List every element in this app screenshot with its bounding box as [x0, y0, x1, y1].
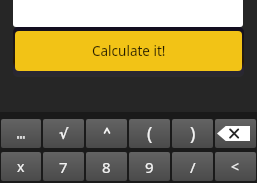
button[interactable]: (: [129, 119, 170, 148]
button[interactable]: <: [215, 152, 256, 181]
button[interactable]: [13, 0, 243, 27]
staticText: (: [147, 121, 153, 146]
button[interactable]: Square root: [43, 119, 84, 148]
staticText: /: [190, 157, 196, 177]
button[interactable]: Power: [86, 119, 127, 148]
staticText: Calculate it!: [92, 42, 166, 60]
button[interactable]: 9: [129, 152, 170, 181]
staticText: √: [59, 126, 69, 142]
button[interactable]: Ellipsis: [1, 119, 41, 148]
button[interactable]: Calculate it!: [15, 31, 242, 71]
button[interactable]: x: [1, 152, 41, 181]
button[interactable]: ): [172, 119, 213, 148]
button[interactable]: 7: [43, 152, 84, 181]
button[interactable]: Backspace: [215, 119, 256, 148]
button[interactable]: 8: [86, 152, 127, 181]
staticText: 9: [145, 157, 154, 177]
button[interactable]: /: [172, 152, 213, 181]
staticText: ): [190, 121, 196, 146]
staticText: 7: [59, 157, 68, 177]
staticText: x: [17, 157, 25, 176]
staticText: <: [231, 157, 240, 176]
staticText: 8: [102, 157, 111, 177]
